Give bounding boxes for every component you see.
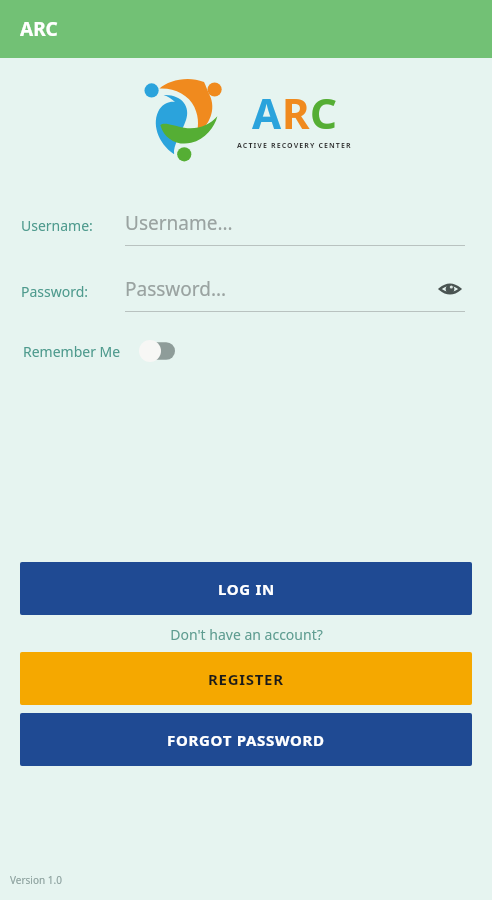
staticText: ACTIVE RECOVERY CENTER — [237, 141, 352, 151]
staticText: Password... — [125, 276, 227, 302]
staticText: C — [310, 84, 337, 141]
button[interactable]: Password: — [0, 270, 492, 312]
staticText: A — [252, 84, 282, 141]
staticText: ARC — [20, 16, 58, 42]
staticText: LOG IN — [218, 579, 275, 599]
staticText: R — [282, 84, 310, 141]
staticText: Password: — [21, 282, 89, 301]
button[interactable]: REGISTER — [20, 652, 472, 705]
staticText: Remember Me — [23, 342, 121, 361]
button[interactable]: Show password — [435, 274, 465, 304]
button[interactable]: Remember Me — [21, 334, 177, 368]
button[interactable]: FORGOT PASSWORD — [20, 713, 472, 766]
staticText: Version 1.0 — [10, 873, 62, 887]
button[interactable]: Don't have an account? — [164, 624, 329, 645]
button[interactable]: Username: — [0, 204, 492, 246]
staticText: Username: — [21, 216, 93, 235]
staticText: Username... — [125, 210, 233, 236]
button[interactable]: LOG IN — [20, 562, 472, 615]
staticText: REGISTER — [208, 669, 284, 689]
staticText: FORGOT PASSWORD — [167, 730, 325, 750]
